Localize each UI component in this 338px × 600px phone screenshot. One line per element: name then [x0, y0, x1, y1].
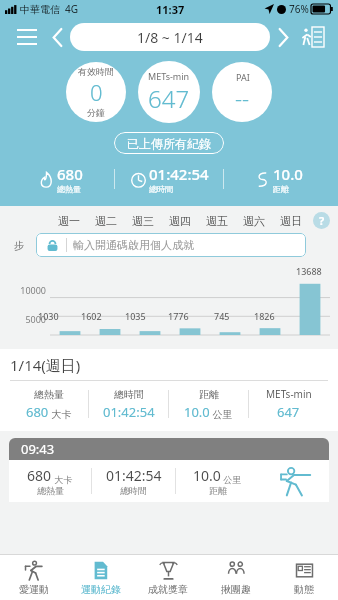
staticText: 76%	[289, 2, 309, 16]
staticText: 週六	[243, 214, 265, 228]
staticText: 680	[26, 403, 49, 421]
button[interactable]: 運動紀錄	[67, 555, 134, 600]
staticText: 週日	[280, 214, 302, 228]
staticText: 總熱量	[37, 485, 64, 496]
button[interactable]: 週日	[272, 214, 309, 228]
staticText: 週五	[206, 214, 228, 228]
button[interactable]: 週四	[161, 214, 198, 228]
staticText: 1035	[125, 310, 146, 322]
button[interactable]: Menu	[10, 20, 44, 54]
staticText: 成就獎章	[148, 583, 188, 596]
staticText: 總時間	[149, 184, 173, 194]
staticText: 大卡	[49, 407, 72, 421]
staticText: 13688	[296, 265, 322, 277]
button[interactable]: 總熱量	[10, 388, 88, 421]
button[interactable]: 愛運動	[0, 555, 67, 600]
staticText: 1602	[81, 310, 102, 322]
staticText: 1/14(週日)	[10, 355, 81, 375]
button[interactable]: 總時間	[89, 388, 168, 421]
button[interactable]: PAI	[212, 62, 272, 122]
staticText: 11:37	[156, 2, 185, 17]
staticText: 10.0	[184, 403, 210, 421]
staticText: 10.0	[193, 466, 221, 485]
staticText: PAI	[236, 71, 250, 83]
staticText: 有效時間	[78, 66, 114, 77]
button[interactable]: 已上傳所有紀錄	[114, 132, 224, 154]
staticText: METs-min	[266, 387, 312, 401]
staticText: 680	[57, 164, 83, 184]
staticText: 647	[148, 82, 190, 115]
staticText: 01:42:54	[149, 164, 209, 184]
staticText: 總時間	[120, 485, 147, 496]
staticText: 已上傳所有紀錄	[127, 136, 211, 151]
staticText: 距離	[209, 485, 227, 496]
button[interactable]: 動態	[270, 555, 338, 600]
staticText: 5000	[4, 313, 46, 325]
staticText: 1776	[168, 310, 189, 322]
button[interactable]: Help	[313, 212, 330, 229]
button[interactable]: 09:43	[9, 438, 329, 502]
staticText: 週二	[95, 214, 117, 228]
button[interactable]: 週一	[50, 214, 87, 228]
staticText: 距離	[199, 388, 219, 401]
button[interactable]: METs-min	[249, 387, 328, 421]
staticText: 01:42:54	[103, 403, 155, 421]
staticText: 公里	[221, 473, 242, 485]
staticText: 動態	[294, 583, 314, 596]
button[interactable]: Next week	[270, 24, 296, 50]
staticText: 10000	[4, 284, 46, 296]
staticText: --	[235, 83, 250, 113]
staticText: 01:42:54	[106, 466, 162, 485]
button[interactable]: 1/8 ~ 1/14	[70, 23, 270, 51]
button[interactable]: Activity log	[296, 21, 328, 53]
staticText: 中華電信	[20, 3, 60, 16]
staticText: 1030	[38, 310, 59, 322]
button[interactable]: 週六	[235, 214, 272, 228]
staticText: 647	[277, 403, 300, 421]
staticText: 0	[90, 77, 103, 107]
staticText: 09:43	[21, 440, 55, 458]
staticText: 總時間	[114, 388, 144, 401]
staticText: 週三	[132, 214, 154, 228]
button[interactable]: 成就獎章	[134, 555, 202, 600]
staticText: 4G	[65, 2, 78, 16]
staticText: 公里	[210, 407, 233, 421]
staticText: 1826	[254, 310, 275, 322]
staticText: 680	[27, 466, 52, 485]
staticText: 大卡	[52, 473, 73, 485]
staticText: 週一	[58, 214, 80, 228]
staticText: 週四	[169, 214, 191, 228]
staticText: 運動紀錄	[81, 583, 121, 596]
button[interactable]: 有效時間	[66, 62, 126, 122]
staticText: 距離	[273, 184, 289, 194]
button[interactable]: Previous week	[44, 24, 70, 50]
staticText: 10.0	[273, 164, 303, 184]
staticText: ?	[319, 213, 325, 228]
staticText: 分鐘	[87, 107, 105, 118]
button[interactable]: 距離	[169, 388, 248, 421]
button[interactable]: 輸入開通碼啟用個人成就	[36, 233, 306, 257]
staticText: 1/8 ~ 1/14	[137, 28, 203, 47]
staticText: 步	[14, 239, 36, 252]
button[interactable]: 週五	[198, 214, 235, 228]
button[interactable]: 揪團趣	[202, 555, 270, 600]
button[interactable]: METs-min	[138, 61, 200, 123]
staticText: 愛運動	[19, 583, 49, 596]
staticText: 揪團趣	[221, 583, 251, 596]
staticText: 總熱量	[34, 388, 64, 401]
button[interactable]: 週三	[124, 214, 161, 228]
staticText: 輸入開通碼啟用個人成就	[73, 238, 194, 252]
staticText: 745	[214, 310, 230, 322]
staticText: METs-min	[148, 70, 190, 82]
button[interactable]: 週二	[87, 214, 124, 228]
staticText: 總熱量	[57, 184, 81, 194]
